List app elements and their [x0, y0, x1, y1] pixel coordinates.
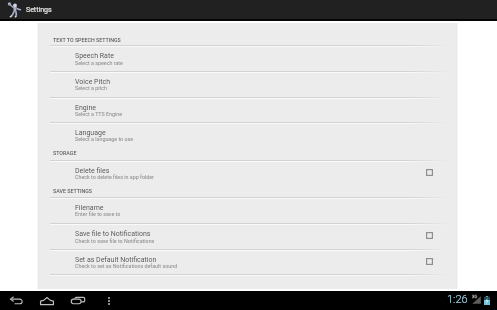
button[interactable]: Recent apps — [65, 292, 91, 309]
staticText: Language — [75, 129, 106, 137]
button[interactable]: Engine — [39, 97, 456, 122]
staticText: Enter file to save to — [75, 211, 121, 217]
staticText: Select a speech rate — [75, 60, 123, 66]
staticText: Filename — [75, 204, 104, 212]
button[interactable]: More options — [100, 292, 118, 309]
button[interactable]: Voice Pitch — [39, 71, 456, 96]
staticText: Set as Default Notification — [75, 256, 157, 264]
staticText: Delete files — [75, 167, 110, 175]
button[interactable]: Language — [39, 122, 456, 147]
staticText: Check to save file to Notifications — [75, 238, 155, 244]
button[interactable]: SAVE SETTINGS — [53, 188, 93, 194]
button[interactable]: STORAGE — [53, 150, 77, 156]
button[interactable]: Speech Rate — [39, 45, 456, 71]
staticText: TEXT TO SPEECH SETTINGS — [53, 37, 121, 43]
staticText: Check to delete files in app folder — [75, 174, 154, 180]
button[interactable]: TEXT TO SPEECH SETTINGS — [53, 37, 121, 43]
staticText: Check to set as Notifications default so… — [75, 263, 178, 269]
staticText: Save file to Notifications — [75, 230, 151, 238]
staticText: SAVE SETTINGS — [53, 188, 93, 194]
button[interactable]: Save file to Notifications — [39, 223, 456, 249]
staticText: Select a TTS Engine — [75, 111, 123, 117]
button[interactable]: Filename — [39, 197, 456, 222]
button[interactable]: Back — [3, 292, 29, 309]
staticText: Voice Pitch — [75, 78, 111, 86]
button[interactable]: Set as Default Notification — [39, 249, 456, 274]
staticText: STORAGE — [53, 150, 77, 156]
button[interactable]: Home — [33, 292, 60, 309]
button[interactable]: Delete files — [39, 160, 456, 185]
staticText: 1:26 — [447, 293, 468, 306]
staticText: Select a pitch — [75, 85, 108, 91]
button[interactable]: Settings — [0, 0, 52, 19]
staticText: Engine — [75, 104, 97, 112]
staticText: Speech Rate — [75, 52, 114, 60]
staticText: Settings — [26, 6, 52, 14]
staticText: Select a language to use — [75, 136, 134, 142]
